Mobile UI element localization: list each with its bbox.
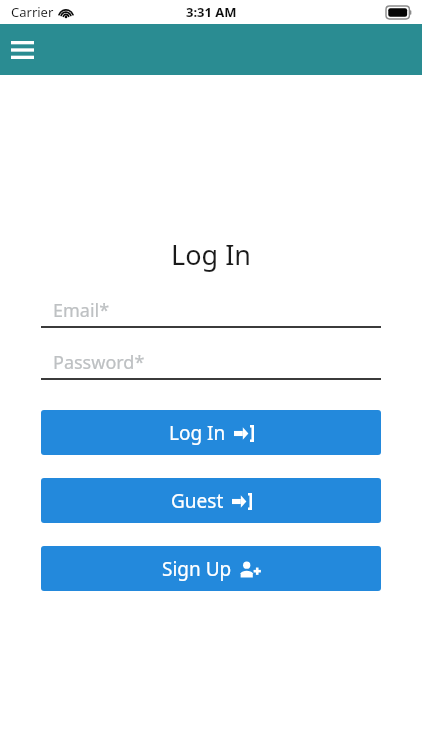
staticText: Log In [0,236,422,273]
button[interactable]: Email* [41,295,381,328]
button[interactable]: Password* [41,347,381,380]
staticText: 3:31 AM [186,3,237,21]
staticText: Guest [171,488,224,514]
staticText: Log In [169,420,226,446]
button[interactable]: Log In [41,410,381,455]
button[interactable]: Sign Up [41,546,381,591]
button[interactable]: Guest [41,478,381,523]
staticText: Carrier [11,3,54,21]
staticText: Email* [53,298,110,323]
button[interactable]: Open navigation menu [4,32,40,68]
staticText: Password* [53,350,145,375]
staticText: Sign Up [162,556,232,582]
